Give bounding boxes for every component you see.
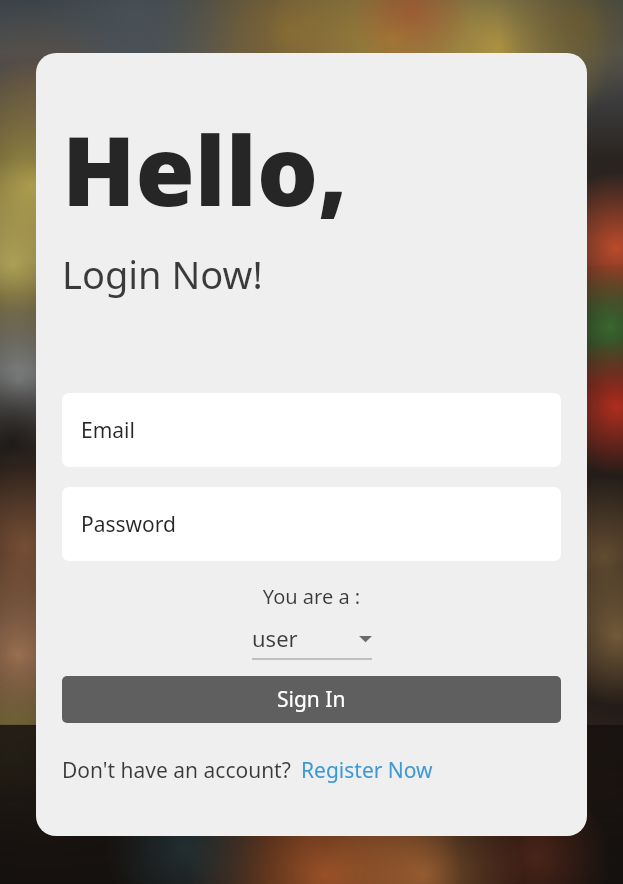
staticText: Email: [81, 416, 135, 445]
staticText: Hello,: [62, 103, 348, 234]
staticText: Login Now!: [62, 248, 263, 300]
staticText: user: [252, 623, 298, 653]
button[interactable]: Register Now: [301, 756, 433, 785]
staticText: Register Now: [301, 756, 433, 785]
staticText: Don't have an account?: [62, 756, 291, 785]
button[interactable]: Select role: [252, 623, 372, 660]
button[interactable]: Email: [62, 393, 561, 467]
staticText: You are a :: [62, 583, 561, 610]
button[interactable]: Password: [62, 487, 561, 561]
staticText: Password: [81, 510, 176, 539]
staticText: Sign In: [277, 685, 346, 714]
button[interactable]: Sign In: [62, 676, 561, 723]
